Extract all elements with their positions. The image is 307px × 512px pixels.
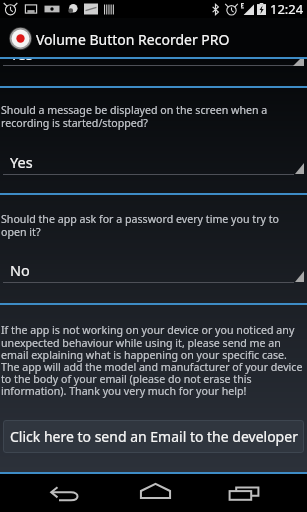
button[interactable]: Yes xyxy=(0,152,307,179)
button[interactable]: Recent apps xyxy=(219,474,269,512)
button[interactable]: No xyxy=(0,260,307,287)
staticText: Should the app ask for a password every … xyxy=(1,212,304,239)
staticText: Click here to send an Email to the devel… xyxy=(10,427,298,446)
staticText: Yes xyxy=(10,58,33,64)
staticText: Should a message be displayed on the scr… xyxy=(1,103,304,130)
staticText: Yes xyxy=(10,152,33,172)
staticText: No xyxy=(10,260,30,280)
staticText: If the app is not working on your device… xyxy=(1,323,304,398)
staticText: Volume Button Recorder PRO xyxy=(36,30,230,49)
button[interactable]: Back xyxy=(40,474,90,512)
staticText: 12:24 xyxy=(270,0,304,18)
button[interactable]: Home xyxy=(130,472,180,510)
button[interactable]: Click here to send an Email to the devel… xyxy=(3,420,304,453)
